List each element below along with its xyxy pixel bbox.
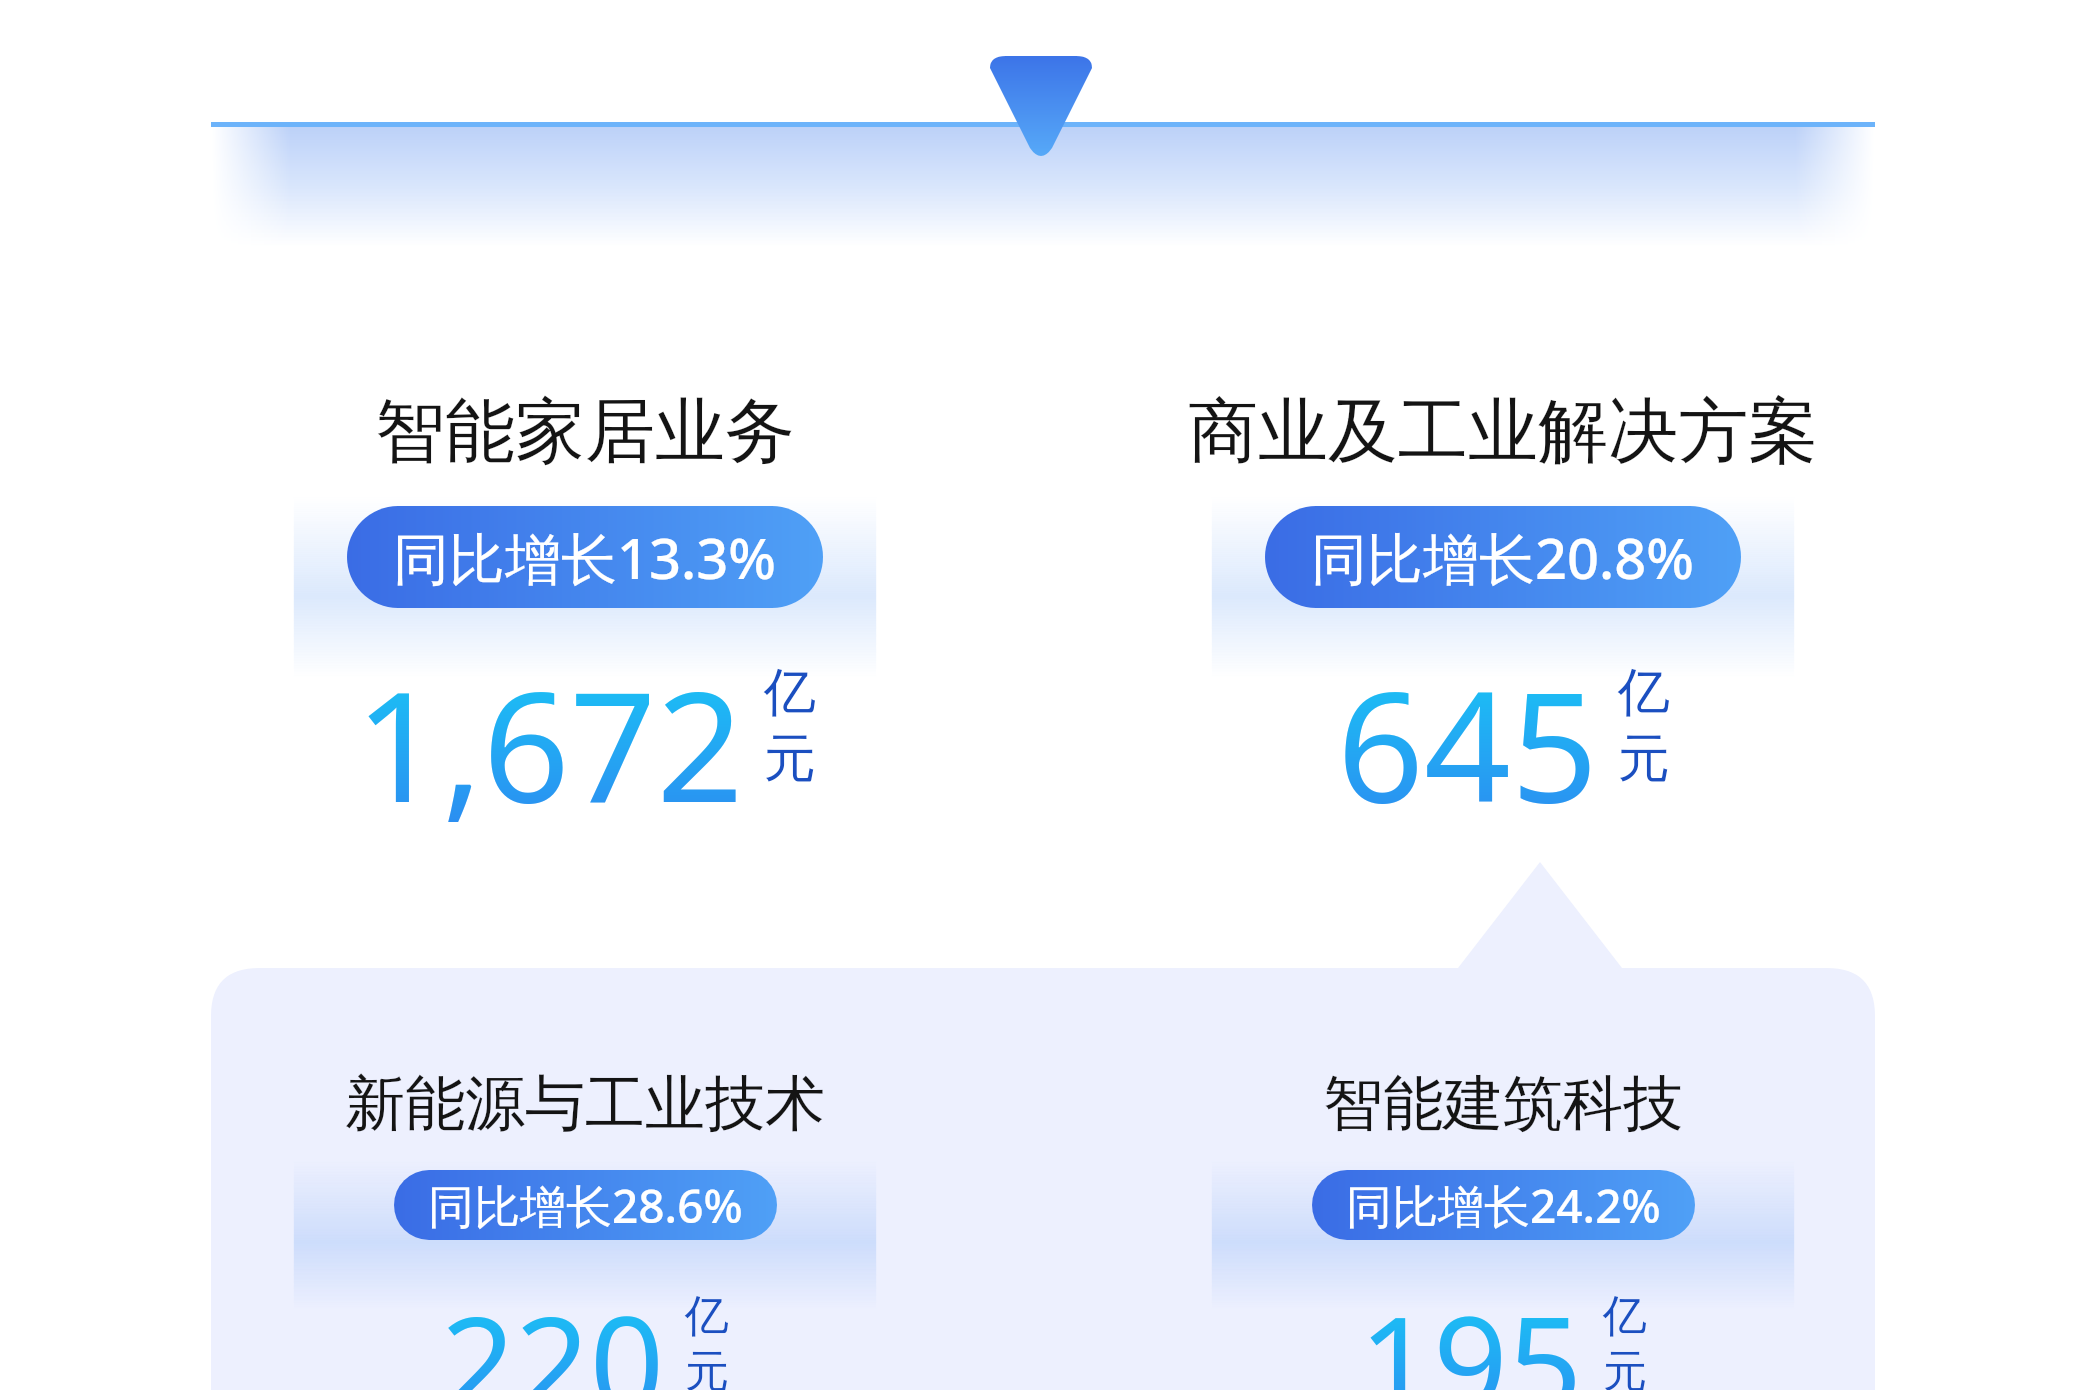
staticText: 亿 [1603,1289,1647,1344]
button[interactable]: 同比增长28.6% [394,1170,777,1240]
staticText: 元 [685,1344,729,1390]
staticText: 元 [1603,1344,1647,1390]
staticText: 同比增长28.6% [428,1174,743,1237]
staticText: 亿 [1618,660,1670,726]
button[interactable]: 同比增长24.2% [1312,1170,1695,1240]
staticText: 195 [1359,1272,1583,1390]
button[interactable]: 同比增长20.8% [1265,506,1741,608]
staticText: 元 [764,726,816,792]
button[interactable]: 同比增长13.3% [347,506,823,608]
staticText: 同比增长13.3% [393,519,777,595]
staticText: 同比增长20.8% [1311,519,1695,595]
staticText: 645 [1337,640,1598,847]
staticText: 220 [441,1272,665,1390]
staticText: 亿 [685,1289,729,1344]
staticText: 元 [1618,726,1670,792]
staticText: 商业及工业解决方案 [1188,388,1818,476]
staticText: 智能家居业务 [375,388,795,476]
staticText: 1,672 [355,640,744,847]
staticText: 智能建筑科技 [1323,1066,1683,1142]
staticText: 亿 [764,660,816,726]
staticText: 同比增长24.2% [1346,1174,1661,1237]
staticText: 新能源与工业技术 [345,1066,825,1142]
